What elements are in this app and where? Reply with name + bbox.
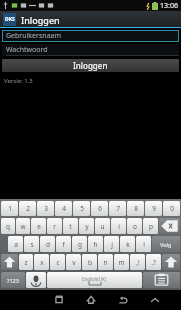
staticText: 5: [80, 204, 84, 213]
button[interactable]: k: [120, 236, 135, 252]
button[interactable]: a: [8, 236, 23, 252]
button[interactable]: o: [127, 218, 142, 234]
button[interactable]: c: [50, 254, 65, 270]
button[interactable]: 8: [127, 201, 144, 216]
staticText: 8: [134, 204, 138, 213]
staticText: Gebruikersnaam: [6, 31, 62, 41]
staticText: j: [111, 240, 113, 249]
button[interactable]: Backspace: [159, 218, 180, 234]
staticText: ,!: [136, 258, 140, 267]
button[interactable]: j: [104, 236, 119, 252]
staticText: n: [103, 258, 108, 267]
button[interactable]: e: [31, 218, 46, 234]
staticText: Versie: 1.3: [4, 77, 33, 85]
button[interactable]: Inloggen: [2, 59, 179, 72]
staticText: 13:06: [160, 1, 178, 11]
staticText: v: [72, 258, 76, 267]
button[interactable]: Back: [107, 290, 139, 310]
staticText: m: [118, 258, 125, 267]
staticText: a: [14, 240, 18, 249]
button[interactable]: u: [95, 218, 110, 234]
button[interactable]: b: [82, 254, 97, 270]
staticText: d: [46, 240, 50, 249]
staticText: Inloggen: [73, 60, 108, 71]
staticText: 3: [44, 204, 48, 213]
staticText: c: [56, 258, 60, 267]
button[interactable]: m: [114, 254, 129, 270]
staticText: Inloggen: [21, 14, 60, 26]
button[interactable]: 4: [55, 201, 72, 216]
staticText: t: [69, 222, 72, 231]
button[interactable]: 5: [73, 201, 90, 216]
staticText: q: [6, 222, 10, 231]
staticText: f: [62, 240, 65, 249]
staticText: DKS: [5, 16, 15, 23]
button[interactable]: 2: [19, 201, 36, 216]
button[interactable]: Home: [75, 290, 107, 310]
button[interactable]: r: [47, 218, 62, 234]
button[interactable]: n: [98, 254, 113, 270]
staticText: g: [78, 240, 82, 249]
button[interactable]: Hide keyboard: [139, 290, 171, 310]
button[interactable]: Shift: [162, 254, 180, 270]
staticText: 9: [152, 204, 156, 213]
staticText: i: [118, 222, 120, 231]
button[interactable]: x: [34, 254, 49, 270]
staticText: k: [126, 240, 130, 249]
button[interactable]: z: [19, 254, 33, 270]
button[interactable]: w: [16, 218, 30, 234]
button[interactable]: g: [72, 236, 87, 252]
button[interactable]: i: [111, 218, 126, 234]
button[interactable]: 7: [109, 201, 126, 216]
staticText: .?: [151, 258, 156, 267]
button[interactable]: f: [56, 236, 71, 252]
staticText: u: [100, 222, 105, 231]
staticText: 4: [62, 204, 66, 213]
button[interactable]: Voice input: [26, 272, 46, 288]
staticText: Wachtwoord: [6, 45, 48, 55]
staticText: Volg: [160, 241, 172, 248]
button[interactable]: 9: [145, 201, 162, 216]
staticText: 7: [116, 204, 120, 213]
staticText: English(UK): [82, 276, 107, 282]
button[interactable]: Wachtwoord: [2, 44, 179, 56]
staticText: w: [20, 222, 26, 231]
button[interactable]: s: [24, 236, 39, 252]
staticText: l: [143, 240, 145, 249]
button[interactable]: .?: [146, 254, 161, 270]
button[interactable]: 6: [91, 201, 108, 216]
button[interactable]: Recents: [43, 290, 75, 310]
button[interactable]: t: [63, 218, 78, 234]
staticText: 6: [98, 204, 102, 213]
button[interactable]: p: [143, 218, 158, 234]
button[interactable]: ?123: [1, 272, 25, 288]
button[interactable]: ,!: [130, 254, 145, 270]
button[interactable]: DKS logo: [3, 13, 16, 26]
staticText: ?123: [7, 277, 19, 284]
button[interactable]: v: [66, 254, 81, 270]
staticText: p: [149, 222, 153, 231]
staticText: z: [24, 258, 28, 267]
staticText: 1: [8, 204, 12, 213]
button[interactable]: l: [136, 236, 151, 252]
button[interactable]: 3: [37, 201, 54, 216]
button[interactable]: Gebruikersnaam: [2, 30, 179, 42]
button[interactable]: q: [1, 218, 15, 234]
button[interactable]: h: [88, 236, 103, 252]
staticText: o: [133, 222, 137, 231]
button[interactable]: Space: [47, 272, 142, 288]
button[interactable]: 1: [1, 201, 18, 216]
button[interactable]: d: [40, 236, 55, 252]
staticText: r: [53, 222, 56, 231]
staticText: s: [30, 240, 34, 249]
button[interactable]: Shift: [1, 254, 18, 270]
staticText: x: [40, 258, 44, 267]
staticText: b: [88, 258, 92, 267]
staticText: y: [85, 222, 89, 231]
button[interactable]: y: [79, 218, 94, 234]
button[interactable]: Clipboard: [143, 272, 180, 288]
button[interactable]: Volg: [152, 236, 180, 252]
staticText: 0: [170, 204, 174, 213]
staticText: 2: [26, 204, 30, 213]
button[interactable]: 0: [163, 201, 180, 216]
